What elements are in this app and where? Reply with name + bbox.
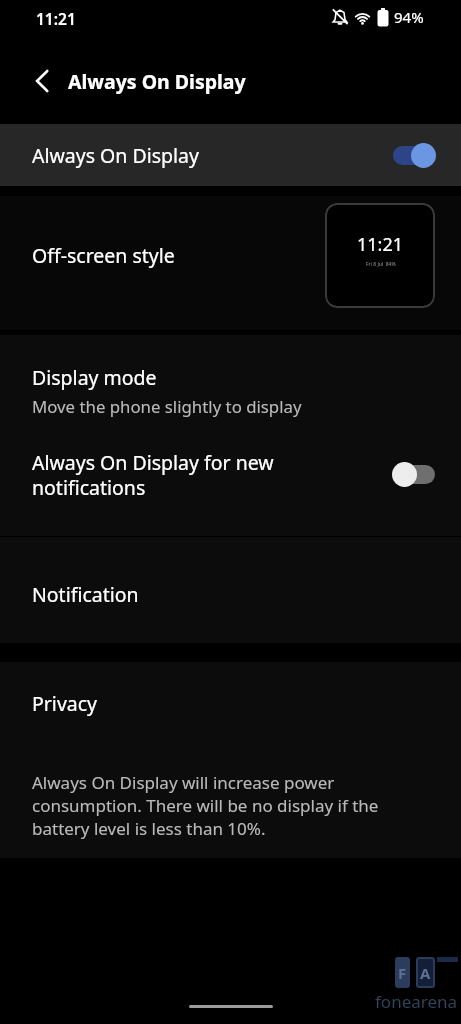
staticText: 11:21 bbox=[36, 8, 76, 29]
staticText: Always On Display bbox=[32, 142, 199, 169]
staticText: Always On Display bbox=[68, 68, 246, 95]
staticText: Off-screen style bbox=[32, 242, 175, 269]
staticText: 94% bbox=[394, 7, 424, 27]
staticText: Display mode bbox=[32, 364, 157, 391]
staticText: Privacy bbox=[32, 690, 98, 717]
button[interactable] bbox=[16, 53, 68, 109]
button[interactable]: Notification bbox=[0, 537, 461, 643]
staticText: A bbox=[420, 963, 431, 983]
staticText: fonearena bbox=[375, 990, 458, 1013]
staticText: 11:21 bbox=[357, 232, 404, 257]
button[interactable]: Privacy bbox=[0, 662, 461, 717]
button[interactable]: Always On Display bbox=[0, 124, 461, 186]
staticText: Always On Display for new notifications bbox=[32, 449, 274, 500]
staticText: Notification bbox=[32, 581, 139, 608]
staticText: Fri 8 Jul 84% bbox=[366, 261, 396, 268]
button[interactable]: Always On Display for new notifications bbox=[0, 449, 461, 500]
button[interactable]: Display mode bbox=[0, 335, 461, 418]
button[interactable] bbox=[392, 461, 436, 488]
button[interactable] bbox=[392, 142, 436, 169]
staticText: F bbox=[398, 963, 407, 983]
button[interactable]: Off-screen style bbox=[0, 196, 461, 330]
staticText: Move the phone slightly to display bbox=[32, 395, 302, 418]
staticText: Always On Display will increase power co… bbox=[32, 771, 379, 840]
